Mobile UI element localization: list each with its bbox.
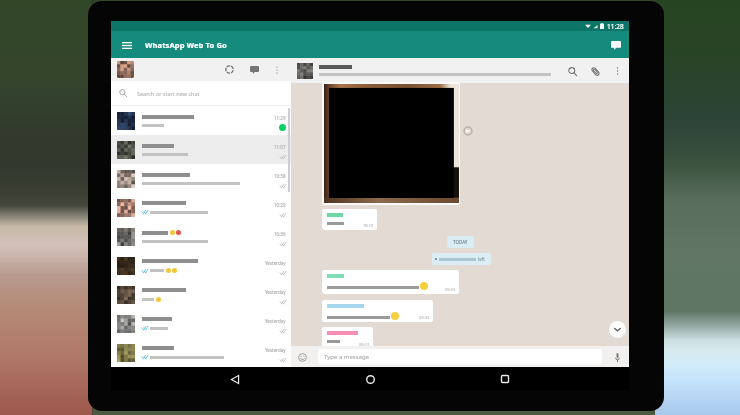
button[interactable]: 09:55 <box>322 270 459 294</box>
button[interactable]: TODAY <box>447 236 474 248</box>
button[interactable]: Search <box>291 58 629 83</box>
button[interactable]: More options <box>271 64 283 76</box>
button[interactable]: Yesterday <box>111 309 291 338</box>
button[interactable]: Type a message <box>318 349 602 364</box>
button[interactable]: Scroll to bottom <box>609 321 626 338</box>
button[interactable]: 10:29 <box>111 193 291 222</box>
button[interactable]: Search <box>564 63 580 79</box>
button[interactable]: 11:07 <box>111 135 291 164</box>
button[interactable]: 10:38 <box>111 164 291 193</box>
button[interactable]: Forward <box>462 125 473 136</box>
button[interactable]: Voice message <box>610 350 624 364</box>
staticText: Search or start new chat <box>137 90 200 97</box>
staticText: WhatsApp Web To Go <box>145 40 227 50</box>
button[interactable]: Attach <box>587 63 603 79</box>
staticText: 09:55 <box>445 287 456 292</box>
button[interactable]: Home <box>359 368 381 390</box>
staticText: 11:29 <box>274 115 286 121</box>
staticText: 11:28 <box>607 22 624 31</box>
button[interactable]: Yesterday <box>111 280 291 309</box>
button[interactable]: Back <box>224 368 246 390</box>
button[interactable]: Yesterday <box>111 251 291 280</box>
staticText: 11:07 <box>274 144 286 150</box>
staticText: 10:29 <box>274 202 286 208</box>
staticText: 18:19 <box>363 223 374 228</box>
button[interactable]: Search or start new chat <box>111 81 291 105</box>
button[interactable]: More options <box>610 64 624 78</box>
button[interactable]: 11:29 <box>111 106 291 135</box>
button[interactable]: Emoji <box>295 350 309 364</box>
staticText: Yesterday <box>265 260 286 266</box>
staticText: 10:38 <box>274 173 286 179</box>
staticText: 09:33 <box>419 315 430 320</box>
staticText: Yesterday <box>265 318 286 324</box>
staticText: left <box>478 256 485 262</box>
button[interactable]: Status <box>222 62 237 77</box>
button[interactable]: left <box>432 253 491 265</box>
button[interactable]: Profile <box>117 61 134 78</box>
button[interactable]: Recent apps <box>494 368 516 390</box>
button[interactable]: Yesterday <box>111 338 291 367</box>
staticText: 10:36 <box>274 231 286 237</box>
button[interactable]: 09:13 <box>322 327 373 349</box>
staticText: TODAY <box>453 239 468 245</box>
button[interactable]: New chat <box>606 35 626 55</box>
button[interactable]: 18:19 <box>322 209 377 230</box>
staticText: Yesterday <box>265 347 286 353</box>
staticText: Type a message <box>324 353 370 361</box>
staticText: Yesterday <box>265 289 286 295</box>
button[interactable]: Open navigation menu <box>118 36 136 54</box>
button[interactable]: 10:36 <box>111 222 291 251</box>
button[interactable]: New chat <box>247 62 262 77</box>
button[interactable]: 09:33 <box>322 300 433 322</box>
button[interactable]: Photo message <box>322 82 460 205</box>
staticText: 09:13 <box>359 342 370 347</box>
